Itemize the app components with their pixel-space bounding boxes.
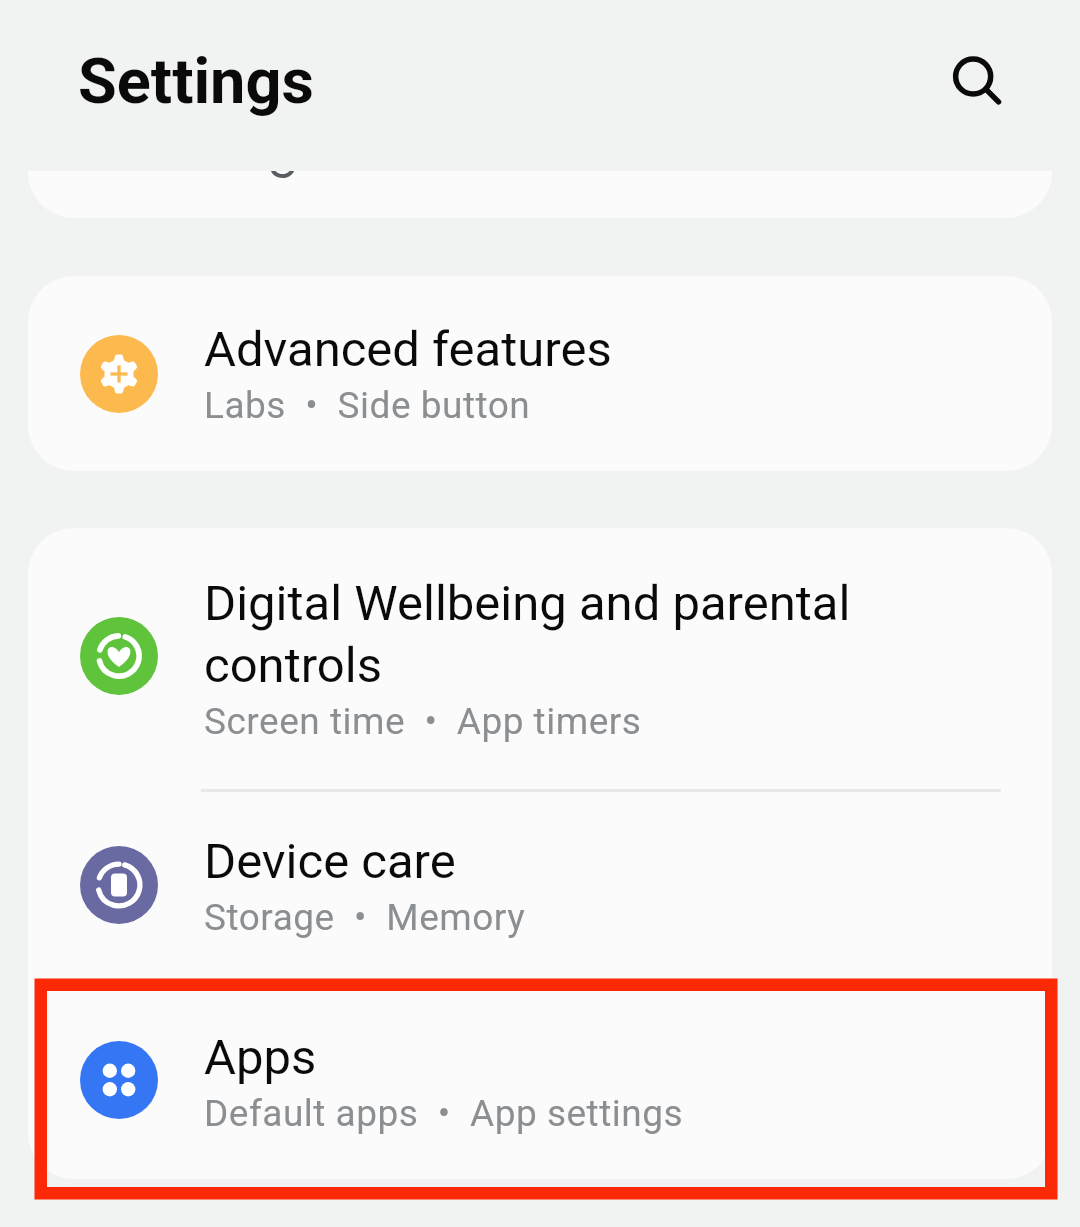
staticText: Storage • Memory	[204, 896, 526, 939]
staticText: Screen time • App timers	[204, 700, 642, 743]
button[interactable]: Search	[940, 44, 1014, 118]
staticText: Labs • Side button	[204, 384, 531, 427]
button[interactable]: Apps	[28, 986, 1052, 1179]
staticText: Default apps • App settings	[204, 1092, 684, 1135]
button[interactable]: Advanced features	[28, 276, 1052, 471]
staticText: Apps	[204, 1029, 317, 1086]
staticText: Settings	[78, 45, 314, 119]
staticText: Digital Wellbeing and parental controls	[204, 575, 884, 694]
button[interactable]: Device care	[28, 792, 1052, 983]
staticText: Device care	[204, 833, 456, 890]
button[interactable]: Digital Wellbeing and parental controls	[28, 528, 1052, 789]
staticText: Advanced features	[204, 321, 612, 378]
